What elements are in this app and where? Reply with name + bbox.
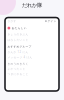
staticText: メッセージ 4 けん	[7, 55, 32, 59]
staticText: はなしたいこと	[7, 38, 28, 41]
staticText: きょうのきぶん	[7, 33, 28, 36]
staticText: さがす	[7, 20, 16, 23]
staticText: きのうのきろく	[7, 62, 28, 65]
staticText: さんか 12 にん	[7, 50, 28, 54]
staticText: よかったこと	[7, 67, 25, 71]
staticText: あたらしい	[12, 26, 27, 30]
staticText: だれか隊	[22, 2, 42, 9]
staticText: おすすめグループ	[7, 45, 31, 48]
staticText: ログイン	[44, 20, 56, 23]
staticText: つぎにやること	[7, 72, 28, 76]
